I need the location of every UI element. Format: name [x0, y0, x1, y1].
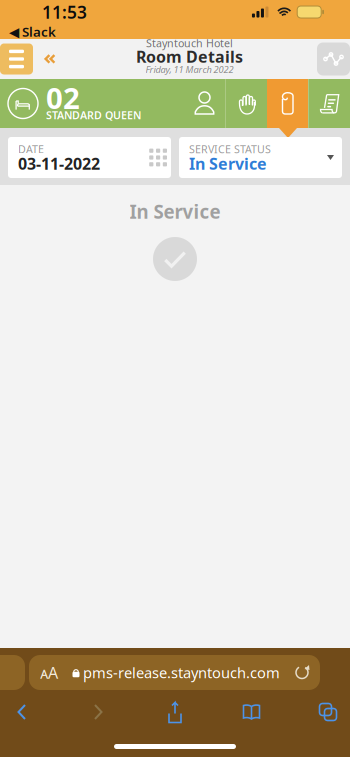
- staticText: Stayntouch Hotel: [146, 36, 233, 50]
- button[interactable]: Forward: [84, 698, 112, 726]
- button[interactable]: Housekeeping: [226, 79, 267, 128]
- button[interactable]: Statistics: [317, 42, 350, 75]
- button[interactable]: SERVICE STATUS: [179, 137, 342, 178]
- button[interactable]: ᴀA: [29, 655, 320, 690]
- button[interactable]: Tabs: [314, 698, 342, 726]
- button[interactable]: Menu: [0, 43, 33, 74]
- staticText: Room Details: [136, 46, 243, 67]
- button[interactable]: Back: [33, 39, 62, 79]
- button[interactable]: Service status: [267, 79, 308, 128]
- button[interactable]: Share: [161, 698, 189, 726]
- button[interactable]: DATE: [8, 137, 171, 178]
- staticText: 02: [46, 78, 80, 117]
- staticText: In Service: [189, 153, 267, 174]
- staticText: STANDARD QUEEN: [46, 108, 141, 122]
- button[interactable]: Guest: [184, 79, 225, 128]
- staticText: 03-11-2022: [18, 153, 100, 174]
- staticText: 11:53: [42, 0, 87, 23]
- staticText: ᴀA: [40, 662, 58, 683]
- button[interactable]: Back: [8, 698, 36, 726]
- staticText: DATE: [18, 142, 44, 156]
- staticText: SERVICE STATUS: [189, 142, 271, 156]
- staticText: In Service: [129, 199, 220, 224]
- staticText: ◀ Slack: [9, 23, 56, 40]
- staticText: Friday, 11 March 2022: [145, 63, 233, 76]
- button[interactable]: Bookmarks: [237, 698, 265, 726]
- staticText: pms-release.stayntouch.com: [83, 663, 280, 682]
- button[interactable]: Notes: [309, 79, 350, 128]
